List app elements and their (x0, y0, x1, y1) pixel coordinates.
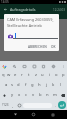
button[interactable]: r (18, 70, 25, 80)
button[interactable]: GIF (21, 63, 27, 69)
button[interactable]: w (6, 70, 12, 80)
staticText: h (38, 82, 41, 88)
staticText: q (2, 72, 5, 78)
staticText: l (60, 82, 62, 88)
button[interactable]: Take photo (6, 32, 14, 40)
button[interactable]: Emoji (16, 100, 22, 110)
button[interactable]: Back (1, 5, 10, 14)
staticText: , (12, 103, 14, 108)
button[interactable]: OK (49, 43, 58, 51)
staticText: CAM Erfassung 26030059, (7, 17, 54, 22)
staticText: . (55, 103, 57, 108)
button[interactable]: Shift (0, 90, 9, 100)
button[interactable]: i (46, 70, 53, 80)
button[interactable]: c (23, 90, 30, 100)
button[interactable]: Clipboard (40, 63, 46, 69)
staticText: b (39, 92, 42, 98)
button[interactable]: f (22, 80, 29, 90)
button[interactable]: t (25, 70, 32, 80)
staticText: y (11, 92, 14, 98)
staticText: t (28, 72, 30, 78)
button[interactable]: x (16, 90, 23, 100)
staticText: e (14, 72, 17, 78)
staticText: g (31, 82, 34, 88)
staticText: n (46, 92, 49, 98)
staticText: u (41, 72, 44, 78)
staticText: x (18, 92, 21, 98)
button[interactable]: Back (12, 111, 19, 118)
staticText: Stellleuchte Antrieb (7, 23, 42, 28)
staticText: o (55, 72, 58, 78)
staticText: j (46, 82, 48, 88)
button[interactable]: Settings (50, 63, 56, 69)
staticText: v (32, 92, 35, 98)
button[interactable]: l (57, 80, 64, 90)
staticText: c (25, 92, 28, 98)
button[interactable]: ?123 (1, 100, 10, 110)
button[interactable]: s (9, 80, 15, 90)
button[interactable]: h (36, 80, 43, 90)
button[interactable]: v (30, 90, 37, 100)
button[interactable]: Stickers (31, 63, 37, 69)
staticText: d (17, 82, 20, 88)
button[interactable]: z (32, 70, 39, 80)
staticText: k (52, 82, 55, 88)
staticText: r (21, 72, 23, 78)
staticText: a (5, 82, 8, 88)
button[interactable]: p (60, 70, 67, 80)
button[interactable]: ABBRECHEN (26, 43, 49, 51)
button[interactable]: e (12, 70, 18, 80)
button[interactable]: Recents (49, 111, 56, 118)
staticText: 14:05 (1, 0, 9, 4)
button[interactable]: Google (1, 63, 7, 69)
button[interactable]: k (50, 80, 57, 90)
button[interactable]: m (51, 90, 58, 100)
button[interactable]: q (0, 70, 6, 80)
button[interactable]: Backspace (58, 90, 67, 100)
staticText: z (35, 72, 37, 78)
staticText: i (49, 72, 51, 78)
button[interactable]: Search (11, 63, 17, 69)
button[interactable]: Period (53, 100, 58, 110)
button[interactable]: Enter (58, 101, 66, 109)
button[interactable]: More (60, 63, 66, 69)
button[interactable]: j (43, 80, 50, 90)
button[interactable]: g (29, 80, 36, 90)
staticText: ?123 (2, 103, 9, 107)
staticText: p (62, 72, 65, 78)
staticText: OK (51, 45, 56, 49)
button[interactable]: Home (30, 111, 37, 118)
button[interactable]: d (15, 80, 22, 90)
button[interactable]: b (37, 90, 44, 100)
staticText: w (7, 72, 11, 78)
staticText: m (53, 92, 57, 98)
staticText: Auftragsdetails (10, 7, 36, 12)
staticText: 12:24:03 (53, 8, 65, 12)
staticText: f (25, 82, 27, 88)
button[interactable]: Comma (10, 100, 16, 110)
button[interactable]: n (44, 90, 51, 100)
button[interactable]: y (9, 90, 16, 100)
staticText: s (11, 82, 14, 88)
button[interactable]: o (53, 70, 60, 80)
button[interactable]: u (39, 70, 46, 80)
staticText: ABBRECHEN (28, 45, 47, 49)
button[interactable]: a (3, 80, 9, 90)
